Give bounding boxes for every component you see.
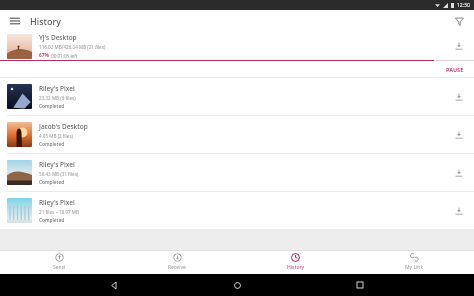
staticText: 00:01:05 left [51, 53, 78, 59]
staticText: 56.43 MB (31 files) [39, 171, 79, 177]
button[interactable]: Download [451, 127, 467, 143]
staticText: 21 files – 18.97 MB [39, 209, 79, 215]
staticText: Riley's Pixel [39, 198, 75, 207]
button[interactable]: Download [451, 203, 467, 219]
staticText: Completed [39, 141, 65, 148]
button[interactable]: Receive [118, 250, 236, 274]
button[interactable]: Riley's Pixel [0, 78, 474, 115]
staticText: 4.05 MB (2 files) [39, 133, 73, 139]
button[interactable]: PAUSE [442, 64, 468, 75]
staticText: 116.02 MB/426.04 MB (21 files) [39, 44, 106, 50]
button[interactable]: Jacob's Desktop [0, 116, 474, 153]
staticText: YJ's Desktop [39, 33, 77, 42]
button[interactable]: Riley's Pixel [0, 192, 474, 229]
button[interactable]: Recent apps [351, 276, 369, 294]
staticText: Riley's Pixel [39, 84, 75, 93]
staticText: Riley's Pixel [39, 160, 75, 169]
staticText: 12:30 [457, 2, 470, 9]
staticText: Send [53, 264, 65, 271]
button[interactable]: Send [0, 250, 118, 274]
button[interactable]: Download [451, 89, 467, 105]
button[interactable]: Home [228, 276, 246, 294]
button[interactable]: History [236, 250, 355, 274]
staticText: History [287, 264, 305, 271]
button[interactable]: Back [105, 276, 123, 294]
staticText: Completed [39, 179, 65, 186]
staticText: History [30, 15, 62, 27]
button[interactable]: Download [451, 165, 467, 181]
button[interactable]: Download [451, 38, 467, 54]
button[interactable]: Filter [448, 10, 470, 32]
staticText: Receive [168, 264, 186, 271]
staticText: Completed [39, 103, 65, 110]
staticText: PAUSE [446, 66, 464, 73]
button[interactable]: Riley's Pixel [0, 154, 474, 191]
staticText: 67% [39, 52, 49, 59]
staticText: Jacob's Desktop [39, 122, 88, 131]
button[interactable]: Open navigation menu [4, 10, 26, 32]
staticText: 23.32 MB (6 files) [39, 95, 76, 101]
staticText: My Link [405, 264, 424, 271]
staticText: Completed [39, 217, 65, 224]
button[interactable]: YJ's Desktop [0, 32, 474, 78]
button[interactable]: My Link [355, 250, 474, 274]
